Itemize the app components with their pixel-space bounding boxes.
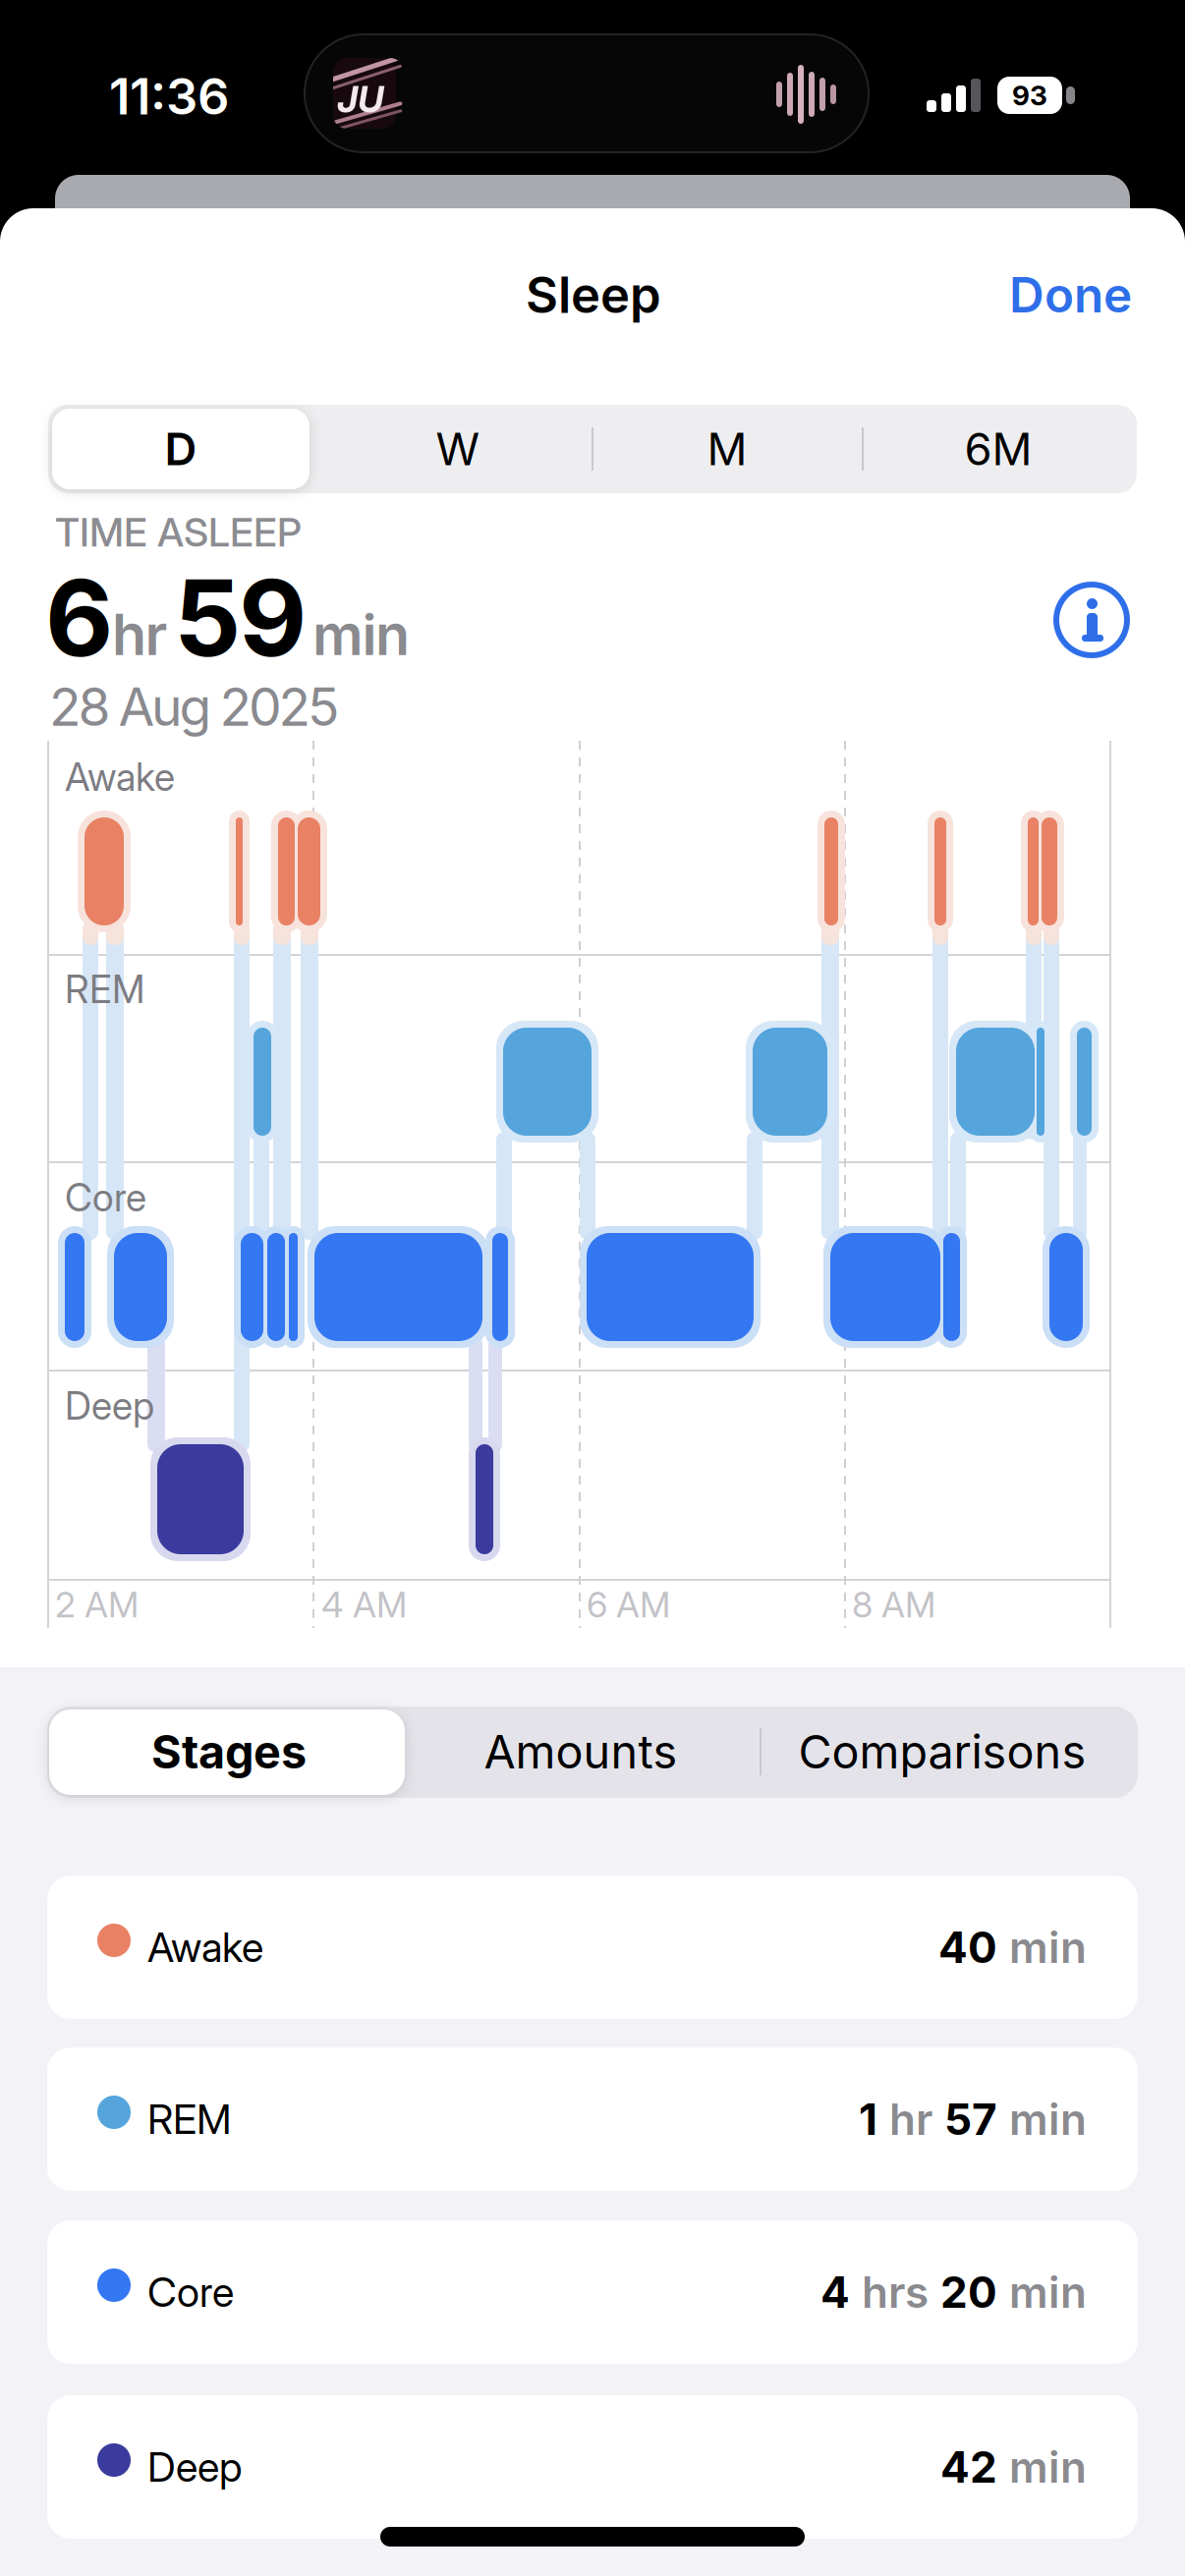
staticText: Done (1009, 266, 1132, 323)
staticText: Sleep (526, 265, 661, 324)
staticText: 4 (820, 2267, 850, 2318)
staticText: min (1009, 1922, 1087, 1973)
staticText: 42 (940, 2441, 997, 2492)
staticText: Stages (151, 1725, 307, 1779)
staticText: JU (337, 78, 384, 121)
staticText: Awake (147, 1923, 263, 1971)
staticText: 11:36 (109, 67, 229, 126)
staticText: 6M (964, 423, 1032, 475)
staticText: hr (889, 2094, 932, 2145)
button[interactable]: W (329, 409, 587, 489)
staticText: 93 (1012, 79, 1047, 112)
staticText: 4 AM (321, 1584, 407, 1625)
button[interactable]: Amounts (414, 1710, 748, 1793)
staticText: min (1009, 2441, 1087, 2492)
staticText: 1 (859, 2094, 877, 2145)
staticText: Comparisons (798, 1725, 1086, 1779)
staticText: Core (147, 2268, 234, 2316)
staticText: M (707, 423, 747, 475)
staticText: W (436, 423, 480, 475)
staticText: 6 AM (587, 1584, 670, 1625)
staticText: REM (147, 2095, 232, 2143)
staticText: 20 (940, 2267, 997, 2318)
staticText: min (312, 601, 410, 668)
staticText: TIME ASLEEP (55, 509, 302, 555)
staticText: min (1009, 2267, 1087, 2318)
staticText: REM (65, 967, 144, 1012)
staticText: hrs (862, 2267, 929, 2318)
button[interactable]: Comparisons (765, 1710, 1119, 1793)
staticText: 40 (938, 1922, 997, 1973)
staticText: 2 AM (55, 1584, 139, 1625)
staticText: Awake (65, 755, 175, 799)
staticText: 57 (944, 2094, 997, 2145)
staticText: Deep (65, 1383, 154, 1428)
button[interactable]: M (598, 409, 856, 489)
button[interactable]: 6M (870, 409, 1127, 489)
button[interactable]: About Time Asleep (1056, 585, 1127, 655)
staticText: hr (112, 601, 168, 668)
staticText: Core (65, 1175, 146, 1220)
staticText: 8 AM (852, 1584, 935, 1625)
staticText: 28 Aug 2025 (49, 676, 339, 738)
staticText: Amounts (484, 1725, 677, 1779)
staticText: 6 (45, 556, 113, 680)
button[interactable]: Done (916, 251, 1132, 339)
staticText: D (165, 423, 197, 475)
button[interactable]: D (52, 409, 310, 489)
staticText: 59 (174, 556, 307, 680)
staticText: min (1009, 2094, 1087, 2145)
button[interactable]: Stages (51, 1710, 407, 1793)
staticText: Deep (147, 2443, 242, 2491)
